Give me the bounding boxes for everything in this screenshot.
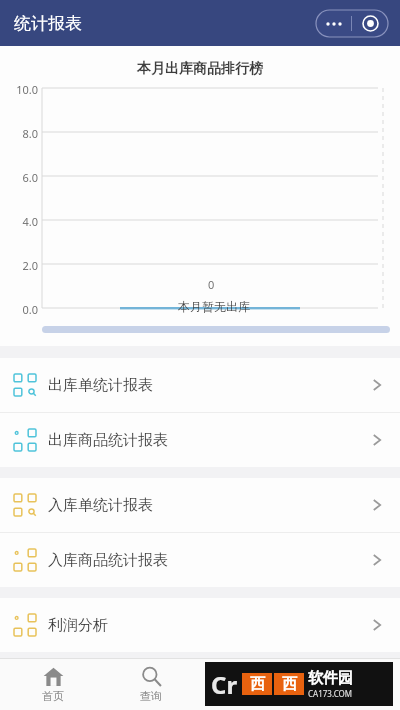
staticText: 统计报表 [14,13,82,34]
button[interactable]: 出库商品统计报表 [0,413,400,467]
button[interactable]: 入库商品统计报表 [0,533,400,587]
staticText: 西 [282,675,297,694]
staticText: 首页 [42,689,64,703]
staticText: 10.0 [4,82,38,97]
button[interactable]: 开单 [204,658,294,710]
button[interactable]: More options [316,10,351,37]
staticText: CA173.COM [308,688,353,699]
button[interactable]: 出库单统计报表 [0,358,400,412]
button[interactable]: 入库单统计报表 [0,478,400,532]
staticText: 0.0 [4,302,38,317]
button[interactable]: 利润分析 [0,598,400,652]
staticText: 本月暂无出库 [178,299,250,314]
staticText: Cr [211,668,238,701]
staticText: 软件园 [308,669,353,688]
staticText: 8.0 [4,126,38,141]
staticText: 出库商品统计报表 [48,431,368,450]
staticText: 入库单统计报表 [48,496,368,515]
button[interactable]: Close [352,10,388,37]
staticText: 开单 [238,689,260,703]
staticText: 利润分析 [48,616,368,635]
staticText: 西 [250,675,265,694]
staticText: 2.0 [4,258,38,273]
button[interactable]: 查询 [106,658,196,710]
staticText: 0 [208,277,215,292]
staticText: 4.0 [4,214,38,229]
staticText: 6.0 [4,170,38,185]
staticText: 出库单统计报表 [48,376,368,395]
staticText: 入库商品统计报表 [48,551,368,570]
button[interactable]: 设置 [302,658,392,710]
button[interactable]: 首页 [8,658,98,710]
staticText: 设置 [336,689,358,703]
staticText: 查询 [140,689,162,703]
staticText: 本月出库商品排行榜 [0,60,400,78]
